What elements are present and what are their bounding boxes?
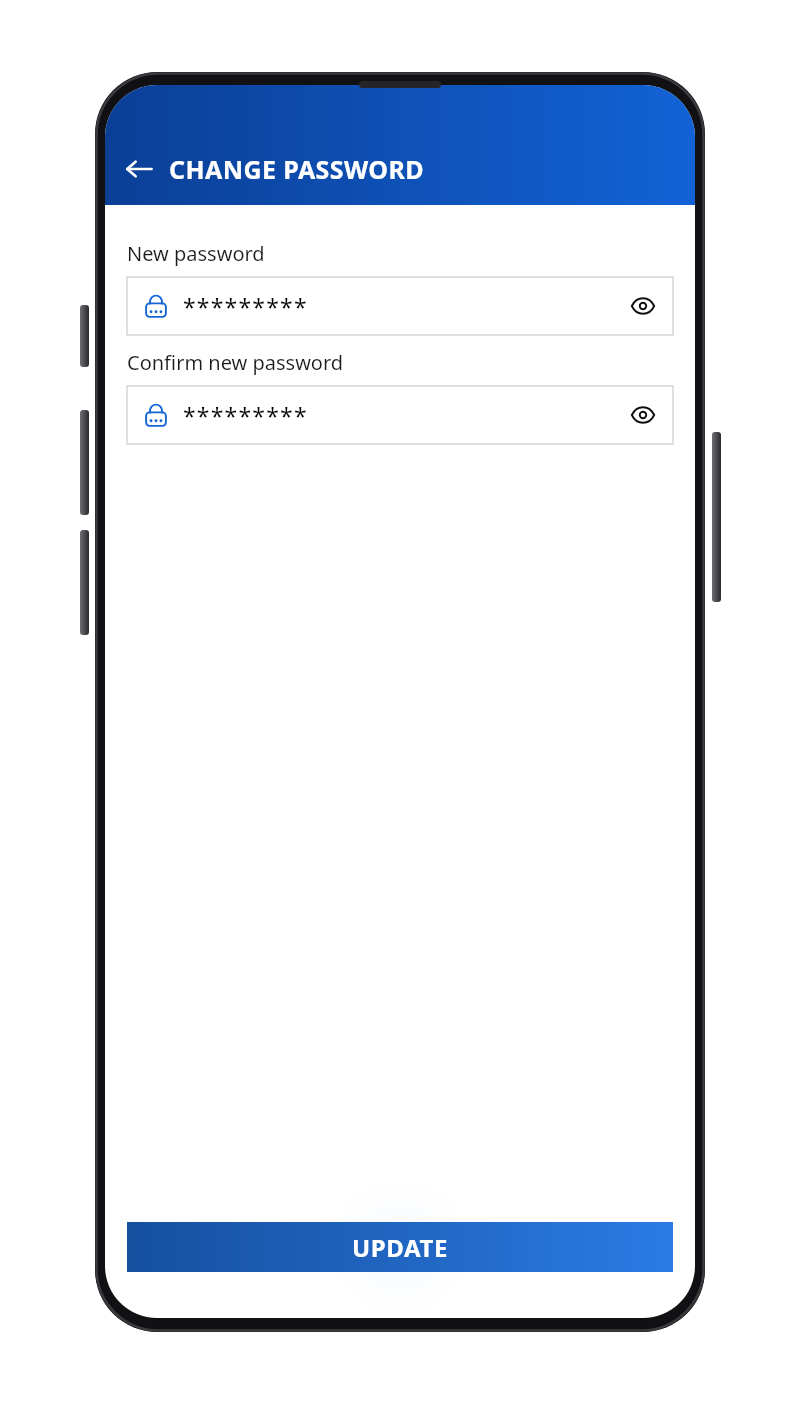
staticText: *********	[183, 291, 308, 322]
button[interactable]: UPDATE	[127, 1222, 673, 1272]
button[interactable]: Show password	[621, 393, 665, 437]
button[interactable]: *********	[127, 277, 673, 335]
staticText: New password	[127, 240, 265, 267]
button[interactable]: Back	[117, 147, 161, 191]
button[interactable]: Show password	[621, 284, 665, 328]
staticText: UPDATE	[352, 1231, 448, 1264]
staticText: *********	[183, 400, 308, 431]
staticText: CHANGE PASSWORD	[169, 152, 424, 186]
staticText: Confirm new password	[127, 349, 344, 376]
button[interactable]: *********	[127, 386, 673, 444]
